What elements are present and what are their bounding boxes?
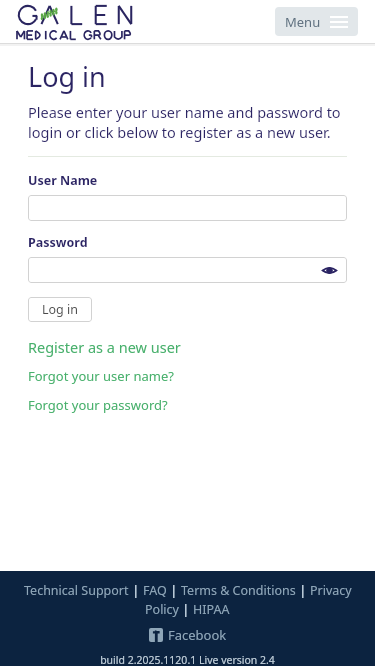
button[interactable]: Show password: [320, 261, 338, 279]
button[interactable]: Log in: [28, 297, 92, 322]
staticText: Register as a new user: [28, 337, 181, 357]
staticText: Forgot your password?: [28, 396, 168, 414]
staticText: Terms & Conditions: [181, 582, 296, 599]
button[interactable]: HIPAA: [193, 601, 230, 618]
button[interactable]: Policy: [145, 601, 179, 618]
staticText: |: [167, 582, 181, 599]
staticText: Technical Support: [24, 582, 129, 599]
staticText: |: [179, 601, 193, 618]
staticText: build 2.2025.1120.1 Live version 2.4: [100, 653, 275, 666]
button[interactable]: User Name field: [28, 195, 347, 221]
staticText: |: [129, 582, 143, 599]
staticText: Facebook: [168, 626, 227, 644]
button[interactable]: Terms & Conditions: [181, 582, 296, 599]
staticText: |: [296, 582, 310, 599]
button[interactable]: Forgot your user name?: [28, 366, 174, 386]
staticText: HIPAA: [193, 601, 230, 618]
staticText: Privacy: [310, 582, 352, 599]
staticText: Menu: [285, 13, 321, 31]
button[interactable]: Register as a new user: [28, 336, 181, 358]
button[interactable]: Forgot your password?: [28, 395, 168, 415]
button[interactable]: Password field: [28, 257, 347, 283]
button[interactable]: FAQ: [143, 582, 167, 599]
button[interactable]: Menu: [275, 7, 358, 36]
staticText: Log in: [42, 301, 79, 318]
staticText: Password: [28, 234, 88, 251]
staticText: User Name: [28, 172, 98, 189]
staticText: Please enter your user name and password…: [28, 102, 347, 142]
staticText: Log in: [28, 58, 106, 95]
button[interactable]: Privacy: [310, 582, 352, 599]
staticText: Policy: [145, 601, 179, 618]
button[interactable]: Galen Medical Group home: [17, 3, 145, 41]
button[interactable]: Facebook: [149, 626, 227, 644]
staticText: Forgot your user name?: [28, 367, 174, 385]
other: Open menu: [330, 16, 348, 28]
button[interactable]: Technical Support: [24, 582, 129, 599]
staticText: FAQ: [143, 582, 167, 599]
